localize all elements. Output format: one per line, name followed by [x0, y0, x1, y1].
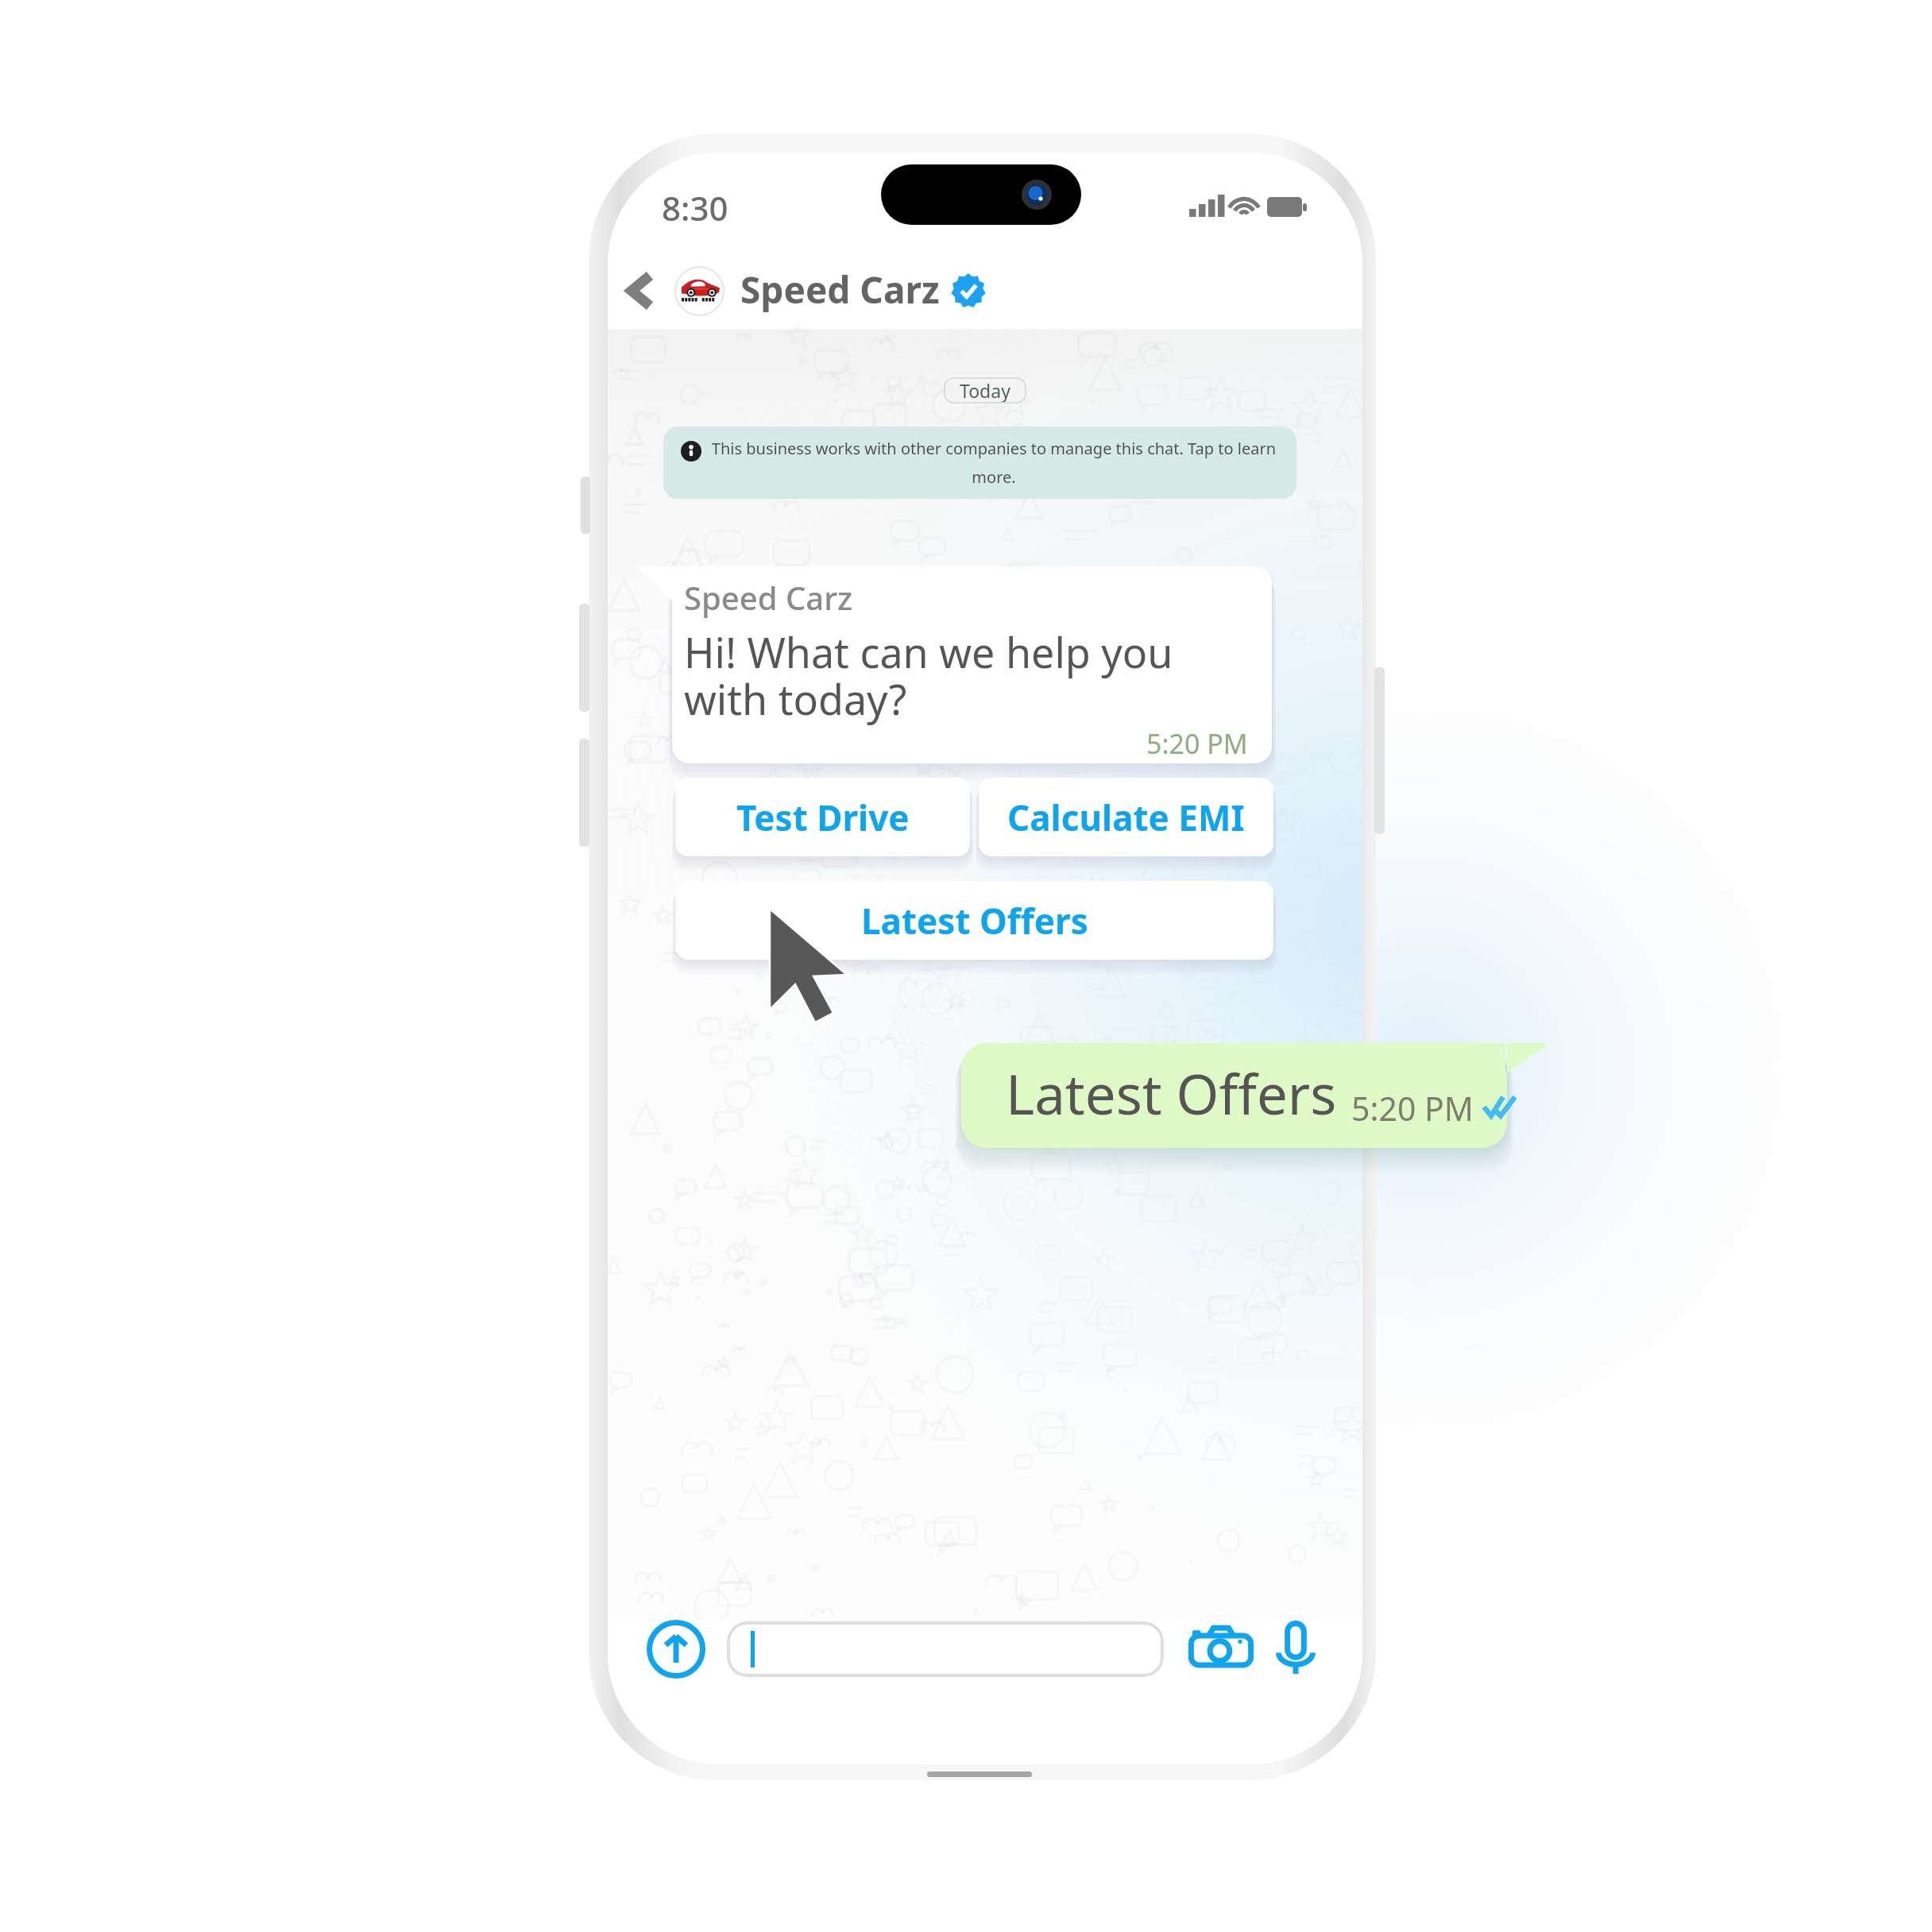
- button[interactable]: Speed Carz: [674, 253, 986, 329]
- staticText: 5:20 PM: [1351, 1086, 1474, 1130]
- button[interactable]: Back: [608, 253, 674, 329]
- staticText: Hi! What can we help you with today?: [684, 624, 1248, 727]
- button[interactable]: Latest Offers: [961, 1043, 1507, 1148]
- staticText: Speed Carz: [684, 576, 853, 619]
- staticText: This business works with other companies…: [709, 438, 1279, 488]
- button[interactable]: Camera: [1186, 1620, 1256, 1679]
- button[interactable]: Calculate EMI: [979, 778, 1273, 856]
- staticText: Calculate EMI: [1007, 794, 1245, 841]
- button[interactable]: Today: [944, 377, 1026, 404]
- staticText: Speed Carz: [740, 265, 940, 315]
- button[interactable]: Expand: [644, 1620, 708, 1679]
- staticText: Latest Offers: [1006, 1056, 1337, 1130]
- staticText: 8:30: [662, 185, 728, 230]
- staticText: Today: [960, 378, 1010, 403]
- button[interactable]: [727, 1621, 1164, 1677]
- button[interactable]: Test Drive: [675, 778, 970, 856]
- staticText: Test Drive: [736, 794, 910, 841]
- button[interactable]: Voice message: [1265, 1620, 1326, 1679]
- button[interactable]: Speed Carz: [672, 566, 1272, 763]
- staticText: Latest Offers: [861, 897, 1088, 945]
- button[interactable]: This business works with other companies…: [663, 427, 1296, 499]
- other: Verified business: [951, 273, 986, 308]
- staticText: 5:20 PM: [1146, 725, 1248, 762]
- button[interactable]: Latest Offers: [675, 881, 1273, 960]
